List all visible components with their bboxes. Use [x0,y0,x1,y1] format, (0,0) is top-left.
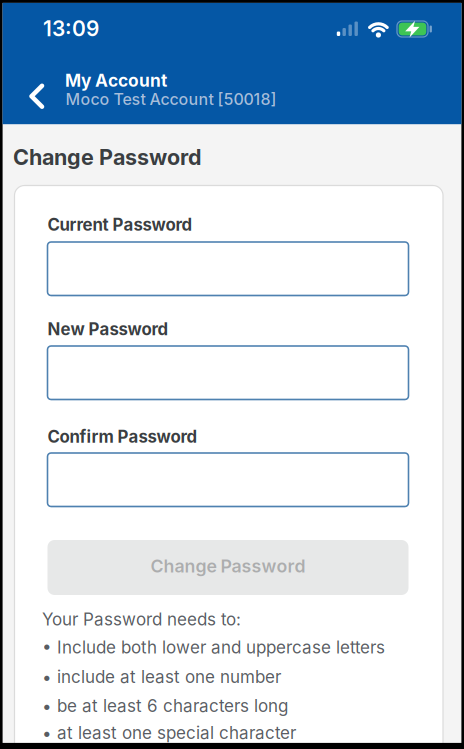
staticText: 13:09 [43,16,99,41]
button[interactable]: Back [0,0,34,44]
staticText: My Account [65,70,167,91]
staticText: Change Password [150,555,305,577]
button[interactable]: Change Password [47,540,408,595]
staticText: Current Password [47,214,192,235]
staticText: New Password [47,319,168,339]
staticText: Moco Test Account [50018] [65,89,276,109]
staticText: Change Password [13,144,202,170]
staticText: • include at least one number [42,666,281,687]
staticText: • Include both lower and uppercase lette… [42,637,385,658]
staticText: Confirm Password [47,426,197,447]
staticText: • at least one special character [42,722,296,743]
button[interactable]: Confirm Password [47,453,408,506]
staticText: • be at least 6 characters long [42,695,288,716]
button[interactable]: Current Password [47,242,408,295]
staticText: Your Password needs to: [42,609,241,630]
button[interactable]: New Password [47,346,408,399]
